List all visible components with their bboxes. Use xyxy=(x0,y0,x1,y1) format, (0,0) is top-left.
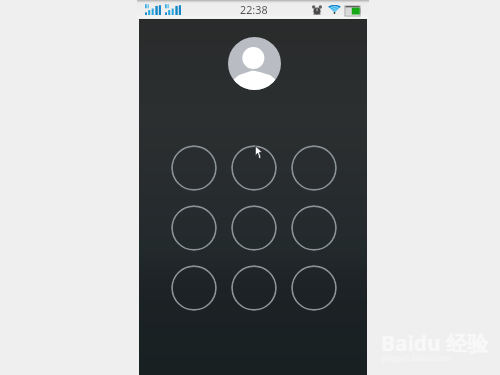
button[interactable]: Pattern dot 3 xyxy=(291,145,337,191)
staticText: Baidu 经验 xyxy=(381,329,489,358)
button[interactable]: Pattern dot 5 xyxy=(231,205,277,251)
button[interactable]: Pattern dot 4 xyxy=(171,205,217,251)
button[interactable]: Pattern dot 7 xyxy=(171,265,217,311)
button[interactable]: Pattern dot 1 xyxy=(171,145,217,191)
button[interactable]: Pattern dot 2 xyxy=(231,145,277,191)
button[interactable]: Pattern dot 6 xyxy=(291,205,337,251)
button[interactable]: Pattern dot 8 xyxy=(231,265,277,311)
other: Wi-Fi connected xyxy=(328,4,341,14)
button[interactable]: Pattern dot 9 xyxy=(291,265,337,311)
other: Alarm set xyxy=(312,5,322,15)
button[interactable]: User avatar xyxy=(228,37,281,90)
other: Battery xyxy=(345,6,361,16)
staticText: 22:38 xyxy=(240,2,268,17)
